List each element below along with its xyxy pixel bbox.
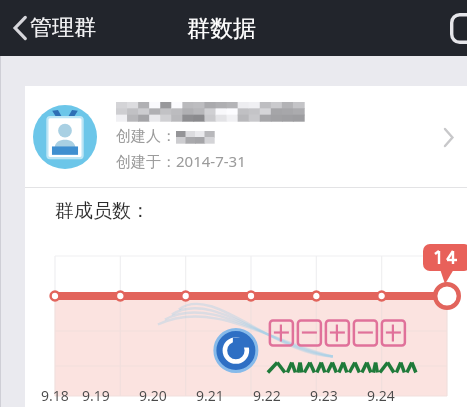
staticText: 9.24 [367,386,395,405]
staticText: 管理群 [30,14,96,42]
button[interactable]: 创建人： [25,86,467,187]
staticText: 9.23 [310,386,338,405]
staticText: 创建于：2014-7-31 [116,151,246,171]
staticText: 9.19 [82,386,110,405]
staticText: 创建人： [116,127,176,146]
button[interactable]: 管理群 [8,7,101,49]
staticText: 9.21 [196,386,224,405]
staticText: 群数据 [187,14,256,43]
staticText: 群成员数： [55,199,150,223]
staticText: 9.22 [253,386,281,405]
staticText: 9.18 [41,386,69,405]
button[interactable]: More options [442,7,467,49]
staticText: 9.20 [139,386,167,405]
